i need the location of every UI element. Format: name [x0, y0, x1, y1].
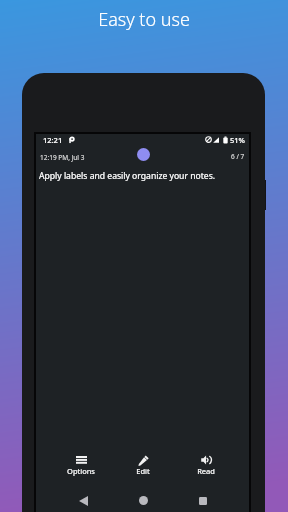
staticText: Read	[197, 466, 215, 476]
button[interactable]: Edit	[122, 450, 164, 478]
button[interactable]: Recent apps	[190, 488, 216, 512]
staticText: Apply labels and easily organize your no…	[39, 170, 216, 182]
staticText: 12:21	[43, 135, 63, 145]
button[interactable]: Back	[70, 488, 96, 512]
button[interactable]: Home	[130, 487, 156, 512]
staticText: Edit	[136, 466, 150, 476]
staticText: 51%	[230, 135, 245, 145]
button[interactable]: Read	[185, 450, 227, 478]
staticText: Easy to use	[0, 7, 288, 32]
button[interactable]: Options	[60, 450, 102, 478]
staticText: Options	[67, 466, 95, 476]
staticText: 6 / 7	[231, 152, 245, 161]
staticText: 12:19 PM, Jul 3	[40, 153, 85, 162]
